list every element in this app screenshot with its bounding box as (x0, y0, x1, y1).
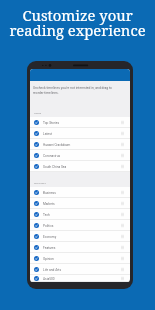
button[interactable]: Asia500 (30, 275, 130, 282)
button[interactable]: Features (30, 242, 130, 253)
button[interactable]: Top Stories (30, 117, 130, 128)
button[interactable]: Business (30, 187, 130, 198)
button[interactable]: Life and Arts (30, 264, 130, 275)
button[interactable]: Tech (30, 209, 130, 220)
staticText: Coronavirus (43, 154, 61, 158)
staticText: Customize your reading experience (0, 5, 155, 40)
staticText: Opinion (43, 257, 54, 261)
button[interactable]: Economy (30, 231, 130, 242)
staticText: Uncheck timelines you're not interested … (33, 86, 114, 95)
staticText: Tech (43, 213, 50, 217)
button[interactable]: Coronavirus (30, 150, 130, 161)
staticText: Latest (43, 132, 52, 136)
staticText: HOME (34, 112, 42, 115)
staticText: Politics (43, 224, 54, 228)
staticText: Business (43, 191, 56, 195)
staticText: Features (43, 246, 56, 250)
staticText: Asia500 (43, 277, 55, 281)
button[interactable]: Huawei Crackdown (30, 139, 130, 150)
button[interactable]: Opinion (30, 253, 130, 264)
button[interactable]: Latest (30, 128, 130, 139)
staticText: South China Sea (43, 165, 67, 169)
staticText: Life and Arts (43, 268, 62, 272)
staticText: SECTIONS (34, 182, 46, 185)
button[interactable]: Politics (30, 220, 130, 231)
button[interactable]: Markets (30, 198, 130, 209)
button[interactable]: South China Sea (30, 161, 130, 172)
staticText: Huawei Crackdown (43, 143, 71, 147)
staticText: Top Stories (43, 121, 60, 125)
staticText: Economy (43, 235, 57, 239)
staticText: Markets (43, 202, 55, 206)
